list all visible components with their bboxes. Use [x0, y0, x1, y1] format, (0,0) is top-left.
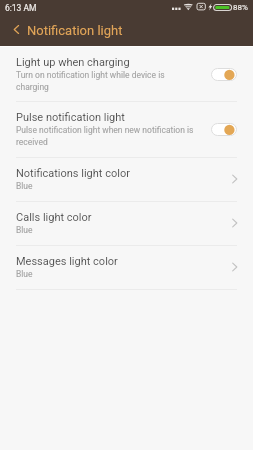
- staticText: Blue: [16, 269, 33, 279]
- staticText: Notifications light color: [16, 167, 130, 180]
- staticText: Calls light color: [16, 211, 92, 224]
- button[interactable]: Toggle: [211, 123, 237, 136]
- button[interactable]: Calls light color: [0, 202, 253, 245]
- button[interactable]: Toggle: [211, 68, 237, 81]
- button[interactable]: Pulse notification light: [0, 102, 253, 157]
- staticText: 6:13 AM: [5, 3, 37, 13]
- button[interactable]: Messages light color: [0, 246, 253, 289]
- staticText: Pulse notification light when new notifi…: [16, 125, 196, 147]
- staticText: Messages light color: [16, 255, 118, 268]
- staticText: Light up when charging: [16, 56, 130, 69]
- button[interactable]: Notifications light color: [0, 158, 253, 201]
- button[interactable]: Back: [7, 21, 24, 38]
- staticText: 88%: [233, 3, 248, 12]
- button[interactable]: Light up when charging: [0, 47, 253, 101]
- staticText: Blue: [16, 181, 33, 191]
- staticText: Notification light: [27, 23, 123, 38]
- staticText: Pulse notification light: [16, 111, 125, 124]
- staticText: Blue: [16, 225, 33, 235]
- staticText: Turn on notification light while device …: [16, 70, 196, 92]
